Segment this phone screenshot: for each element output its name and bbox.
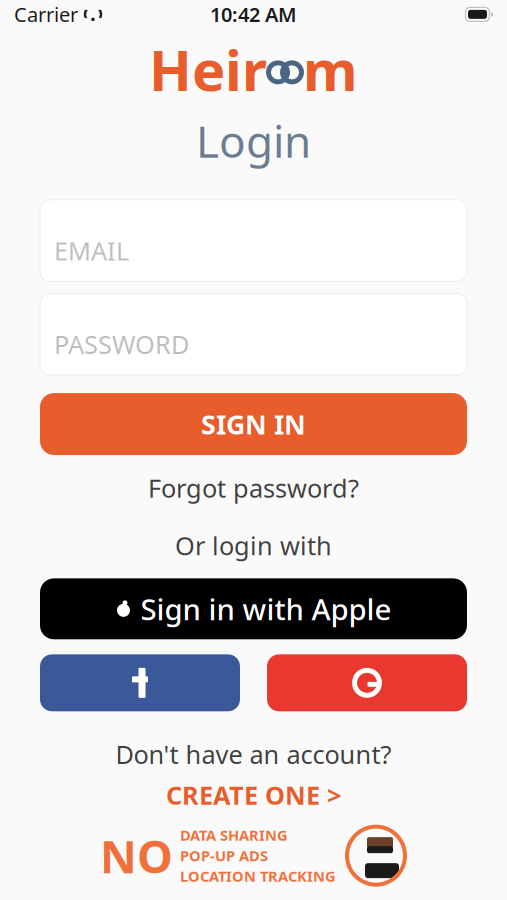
button[interactable]: Sign in with Apple [40,578,467,639]
staticText: 10:42 AM [210,1,297,28]
button[interactable]: Sign in with Facebook [40,654,240,711]
staticText: Login [196,111,311,170]
staticText: LOCATION TRACKING [180,866,336,886]
staticText: NO [100,825,173,886]
staticText: DATA SHARING [180,825,288,845]
staticText: Don't have an account? [115,737,391,771]
staticText: EMAIL [54,234,129,267]
staticText: Heir [149,32,267,107]
staticText: CREATE ONE > [166,778,341,812]
staticText: PASSWORD [54,327,189,361]
button[interactable]: CREATE ONE > [152,773,355,817]
staticText: Forgot password? [148,471,359,505]
staticText: SIGN IN [201,406,306,442]
button[interactable]: Sign in with Google [267,654,467,711]
button[interactable]: EMAIL [40,200,467,281]
staticText: Sign in with Apple [140,589,391,628]
staticText: POP-UP ADS [180,846,268,865]
staticText: Or login with [175,529,332,562]
button[interactable]: SIGN IN [40,393,467,455]
button[interactable]: PASSWORD [40,293,467,375]
button[interactable]: Forgot password? [136,465,371,511]
staticText: Carrier [14,1,78,28]
staticText: m [303,32,358,107]
